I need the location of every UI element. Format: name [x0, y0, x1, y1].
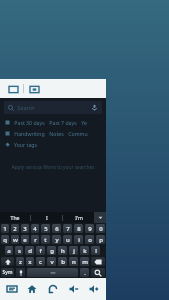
- button[interactable]: .: [80, 268, 89, 277]
- button[interactable]: 1: [1, 224, 9, 233]
- button[interactable]: s: [15, 246, 23, 255]
- staticText: i: [78, 236, 80, 244]
- staticText: Search: [17, 104, 35, 111]
- staticText: k: [83, 247, 87, 255]
- staticText: t: [44, 236, 47, 244]
- button[interactable]: 0: [96, 224, 105, 233]
- staticText: c: [39, 258, 42, 266]
- staticText: n: [72, 258, 76, 266]
- button[interactable]: 8: [74, 224, 83, 233]
- staticText: w: [13, 236, 18, 244]
- staticText: Ye: [81, 119, 87, 126]
- button[interactable]: Volume down: [65, 280, 83, 298]
- button[interactable]: Backspace: [91, 257, 105, 266]
- button[interactable]: x: [26, 257, 34, 266]
- button[interactable]: v: [47, 257, 56, 266]
- button[interactable]: a: [5, 246, 13, 255]
- button[interactable]: Home: [23, 280, 41, 298]
- button[interactable]: 5: [41, 224, 50, 233]
- staticText: 2: [13, 225, 17, 233]
- button[interactable]: 9: [85, 224, 94, 233]
- staticText: 0: [99, 225, 103, 233]
- staticText: Past 7 days: [49, 119, 77, 126]
- staticText: I'm: [75, 214, 83, 221]
- button[interactable]: 4: [31, 224, 39, 233]
- staticText: p: [99, 236, 103, 244]
- button[interactable]: Past 30 days: [14, 119, 45, 126]
- staticText: j: [73, 247, 75, 255]
- staticText: l: [95, 247, 97, 255]
- staticText: 1: [3, 225, 7, 233]
- staticText: v: [50, 258, 54, 266]
- staticText: 4: [33, 225, 37, 233]
- button[interactable]: w: [11, 235, 19, 244]
- staticText: a: [7, 247, 11, 255]
- button[interactable]: I'm: [63, 212, 94, 223]
- button[interactable]: Commu: [68, 130, 88, 137]
- button[interactable]: f: [36, 246, 45, 255]
- button[interactable]: n: [69, 257, 78, 266]
- button[interactable]: o: [85, 235, 94, 244]
- button[interactable]: i: [74, 235, 83, 244]
- staticText: g: [50, 247, 54, 255]
- button[interactable]: Past 7 days: [49, 119, 77, 126]
- staticText: I: [46, 214, 48, 221]
- button[interactable]: Volume up: [85, 280, 103, 298]
- button[interactable]: u: [63, 235, 72, 244]
- staticText: 8: [77, 225, 81, 233]
- button[interactable]: The: [0, 212, 30, 223]
- button[interactable]: y: [52, 235, 61, 244]
- button[interactable]: 6: [52, 224, 61, 233]
- staticText: q: [3, 236, 7, 244]
- button[interactable]: Sym: [1, 268, 14, 277]
- staticText: d: [28, 247, 32, 255]
- button[interactable]: Space: [27, 268, 78, 277]
- button[interactable]: Ye: [81, 119, 87, 126]
- staticText: 6: [55, 225, 59, 233]
- button[interactable]: h: [58, 246, 67, 255]
- staticText: Handwriting: [14, 130, 45, 137]
- button[interactable]: g: [47, 246, 56, 255]
- button[interactable]: r: [31, 235, 39, 244]
- button[interactable]: Back: [44, 280, 62, 298]
- button[interactable]: p: [96, 235, 105, 244]
- button[interactable]: q: [1, 235, 9, 244]
- button[interactable]: Handwriting: [14, 130, 45, 137]
- button[interactable]: j: [69, 246, 78, 255]
- button[interactable]: Voice input: [16, 268, 25, 277]
- button[interactable]: 7: [63, 224, 72, 233]
- staticText: o: [88, 236, 92, 244]
- button[interactable]: 2: [11, 224, 19, 233]
- button[interactable]: t: [41, 235, 50, 244]
- staticText: h: [61, 247, 65, 255]
- button[interactable]: c: [36, 257, 45, 266]
- button[interactable]: Search: [91, 268, 105, 277]
- button[interactable]: k: [80, 246, 89, 255]
- button[interactable]: Notes: [49, 130, 64, 137]
- staticText: Past 30 days: [14, 119, 45, 126]
- staticText: u: [66, 236, 70, 244]
- button[interactable]: d: [25, 246, 34, 255]
- button[interactable]: Window: [7, 83, 19, 95]
- other: Voice search: [91, 104, 98, 111]
- staticText: e: [23, 236, 27, 244]
- staticText: 3: [23, 225, 27, 233]
- button[interactable]: Split screen: [28, 83, 40, 95]
- button[interactable]: Your tags: [14, 141, 37, 148]
- staticText: 7: [66, 225, 70, 233]
- staticText: Apply various filters to your searches: [11, 164, 95, 171]
- staticText: The: [10, 214, 20, 221]
- button[interactable]: Recents: [3, 280, 21, 298]
- button[interactable]: e: [21, 235, 29, 244]
- button[interactable]: b: [58, 257, 67, 266]
- button[interactable]: Search: [8, 101, 98, 114]
- staticText: b: [61, 258, 65, 266]
- staticText: Your tags: [14, 141, 37, 148]
- button[interactable]: More suggestions: [94, 212, 106, 223]
- button[interactable]: Shift: [1, 257, 14, 266]
- button[interactable]: z: [16, 257, 24, 266]
- button[interactable]: m: [80, 257, 89, 266]
- button[interactable]: 3: [21, 224, 29, 233]
- button[interactable]: I: [31, 212, 62, 223]
- button[interactable]: l: [91, 246, 100, 255]
